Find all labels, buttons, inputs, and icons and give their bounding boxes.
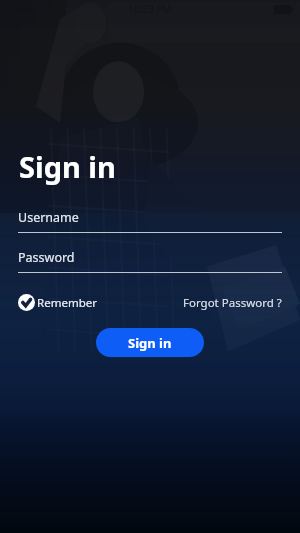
staticText: Remember xyxy=(37,295,97,311)
staticText: Password xyxy=(18,249,75,266)
button[interactable]: Password xyxy=(18,249,282,273)
button[interactable]: Forgot Password ? xyxy=(183,295,282,311)
staticText: Sign in xyxy=(19,147,116,186)
staticText: Sign in xyxy=(128,334,172,352)
button[interactable]: Sign in xyxy=(96,328,204,357)
staticText: Forgot Password ? xyxy=(183,295,282,311)
staticText: Username xyxy=(18,209,79,226)
button[interactable]: Username xyxy=(18,209,282,233)
button[interactable]: Remember xyxy=(18,294,97,311)
